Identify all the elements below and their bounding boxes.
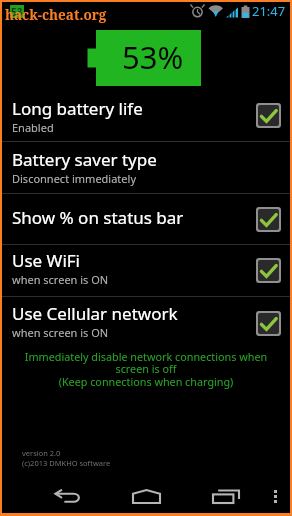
button[interactable]: Long battery life — [2, 89, 290, 141]
staticText: 53 — [11, 5, 23, 18]
staticText: Use Cellular network — [12, 302, 178, 325]
staticText: 21:47 — [252, 2, 286, 20]
staticText: when screen is ON — [12, 325, 109, 340]
staticText: (c)2013 DMKHO software — [22, 458, 111, 468]
button[interactable]: Home — [128, 480, 164, 513]
staticText: version 2.0 — [22, 448, 61, 458]
staticText: 53% — [122, 36, 184, 78]
staticText: Battery saver type — [12, 148, 157, 171]
staticText: Show % on status bar — [12, 206, 184, 229]
button[interactable]: Use Cellular network — [2, 297, 290, 349]
staticText: Immediately disable network connections … — [22, 349, 270, 389]
button[interactable]: Use WiFi — [2, 245, 290, 296]
button[interactable]: Show % on status bar — [2, 194, 290, 244]
staticText: Long battery life — [12, 97, 143, 120]
button[interactable]: Back — [50, 480, 86, 513]
staticText: hack-cheat.org — [5, 6, 107, 24]
button[interactable]: More options — [260, 480, 290, 513]
button[interactable]: Battery saver type — [2, 142, 290, 193]
staticText: when screen is ON — [12, 272, 109, 287]
staticText: Use WiFi — [12, 249, 80, 272]
staticText: Enabled — [12, 120, 54, 135]
button[interactable]: Recent apps — [208, 480, 244, 513]
staticText: Disconnect immediately — [12, 171, 136, 186]
